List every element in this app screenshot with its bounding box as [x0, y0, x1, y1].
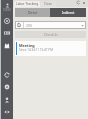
button[interactable]: Safety vest — [1, 42, 13, 49]
staticText: Check In — [44, 32, 58, 37]
staticText: 200 — [26, 23, 32, 28]
button[interactable]: Indirect — [50, 8, 86, 17]
staticText: Meeting — [19, 43, 35, 48]
button[interactable]: Help — [1, 17, 13, 24]
button[interactable]: Visibility — [1, 108, 13, 115]
button[interactable]: Check In — [15, 31, 86, 38]
staticText: Since 14:34:11 15:47 PM — [19, 48, 53, 52]
button[interactable]: Badge — [1, 29, 13, 36]
staticText: Labor Tracking — [16, 2, 39, 6]
button[interactable]: Profile — [1, 1, 13, 11]
staticText: STAND — [1, 8, 13, 12]
button[interactable]: Meeting — [15, 41, 86, 56]
button[interactable]: Settings — [1, 83, 13, 90]
button[interactable]: 200 — [15, 21, 86, 29]
button[interactable]: Reload — [76, 0, 81, 5]
staticText: Direct — [28, 10, 38, 15]
staticText: Indirect — [62, 10, 75, 15]
button[interactable]: Labor Tracking — [14, 1, 40, 7]
button[interactable]: Close — [81, 0, 86, 5]
button[interactable]: Refresh — [1, 71, 13, 78]
button[interactable]: Direct — [15, 8, 50, 17]
staticText: Close — [44, 2, 53, 6]
button[interactable]: Account — [1, 96, 13, 103]
button[interactable]: Close — [40, 1, 56, 7]
